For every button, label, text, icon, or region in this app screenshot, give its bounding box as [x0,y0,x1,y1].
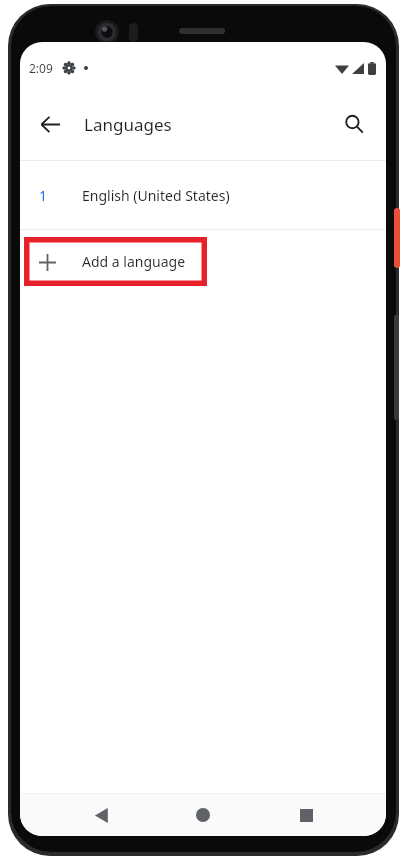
button[interactable]: Recent apps [284,794,328,836]
button[interactable]: Search [332,102,376,146]
staticText: Add a language [82,252,186,271]
staticText: English (United States) [82,186,230,205]
button[interactable]: Back [26,100,74,148]
button[interactable]: Add a language [24,237,207,286]
staticText: 2:09 [29,60,53,76]
staticText: 1 [39,186,48,205]
button[interactable]: Back [79,794,123,836]
staticText: Languages [84,113,172,136]
button[interactable]: Home [181,794,225,836]
button[interactable]: 1 [20,161,386,229]
